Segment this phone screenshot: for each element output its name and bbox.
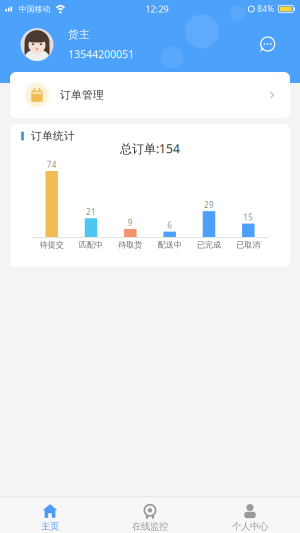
staticText: 个人中心: [232, 521, 268, 532]
staticText: 15: [243, 212, 253, 223]
staticText: 13544200051: [68, 47, 134, 61]
button[interactable]: 主页: [0, 501, 100, 533]
button[interactable]: 在线监控: [100, 501, 200, 533]
staticText: 12:29: [145, 3, 168, 15]
staticText: 已取消: [236, 240, 260, 250]
button[interactable]: 个人中心: [200, 501, 300, 533]
staticText: 匹配中: [79, 240, 103, 250]
button[interactable]: Messages: [255, 33, 279, 57]
staticText: 74: [47, 159, 57, 170]
button[interactable]: 订单管理: [10, 72, 290, 118]
staticText: 中国移动: [18, 4, 50, 14]
staticText: 待提交: [40, 240, 64, 250]
staticText: 6: [167, 220, 172, 231]
staticText: 在线监控: [132, 521, 168, 532]
staticText: 货主: [68, 28, 90, 41]
staticText: 21: [86, 207, 96, 217]
staticText: 配送中: [158, 240, 182, 250]
staticText: 订单统计: [31, 129, 75, 142]
staticText: 84%: [257, 4, 274, 14]
staticText: 已完成: [197, 240, 221, 250]
staticText: 订单管理: [60, 88, 104, 101]
staticText: 待取货: [118, 240, 142, 250]
staticText: 9: [128, 217, 133, 228]
staticText: 主页: [41, 521, 59, 532]
staticText: 29: [204, 199, 214, 210]
staticText: 总订单:154: [120, 140, 180, 156]
